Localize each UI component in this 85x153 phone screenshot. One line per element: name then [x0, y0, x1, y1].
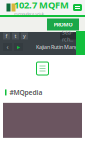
button[interactable]: Social	[3, 32, 10, 39]
staticText: f	[5, 32, 7, 40]
staticText: #MQpedia	[9, 88, 42, 97]
staticText: Search...	[62, 29, 73, 43]
staticText: ▸	[17, 43, 20, 51]
staticText: mengudara sejuk	[14, 11, 44, 16]
staticText: PROMO	[53, 21, 72, 28]
button[interactable]: Menu	[73, 4, 82, 11]
button[interactable]: Play	[14, 43, 23, 51]
staticText: y	[23, 32, 26, 40]
button[interactable]: Social	[21, 32, 28, 39]
staticText: t	[14, 32, 16, 40]
button[interactable]: Previous	[3, 43, 12, 51]
button[interactable]: Social	[12, 32, 19, 39]
staticText: Kajian Rutin Mang…	[36, 43, 82, 51]
staticText: 102.7 MQFM	[14, 0, 69, 11]
staticText: ‹	[6, 43, 8, 51]
